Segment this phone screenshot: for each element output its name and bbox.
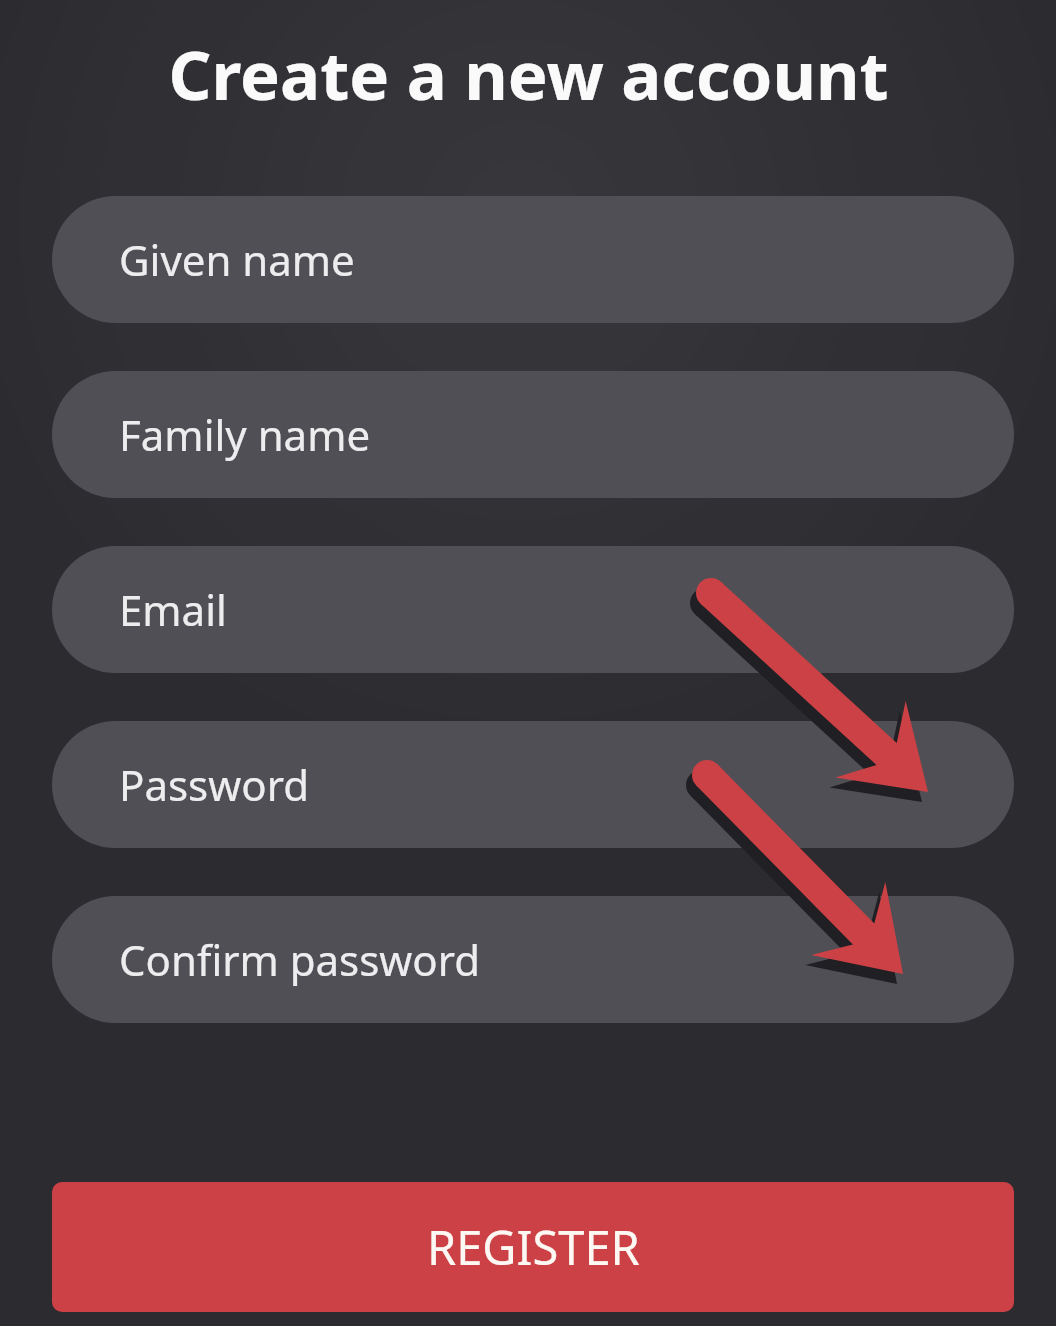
staticText: REGISTER	[427, 1215, 640, 1279]
staticText: Password	[119, 756, 309, 813]
button[interactable]: Given name	[52, 196, 1014, 323]
staticText: Confirm password	[119, 931, 481, 988]
staticText: Create a new account	[168, 28, 889, 119]
button[interactable]: REGISTER	[52, 1182, 1014, 1312]
staticText: Family name	[119, 406, 371, 463]
staticText: Given name	[119, 231, 355, 288]
button[interactable]: Family name	[52, 371, 1014, 498]
staticText: Email	[119, 581, 227, 638]
button[interactable]: Confirm password	[52, 896, 1014, 1023]
other: Annotation arrows	[0, 0, 1056, 1326]
button[interactable]: Password	[52, 721, 1014, 848]
button[interactable]: Email	[52, 546, 1014, 673]
